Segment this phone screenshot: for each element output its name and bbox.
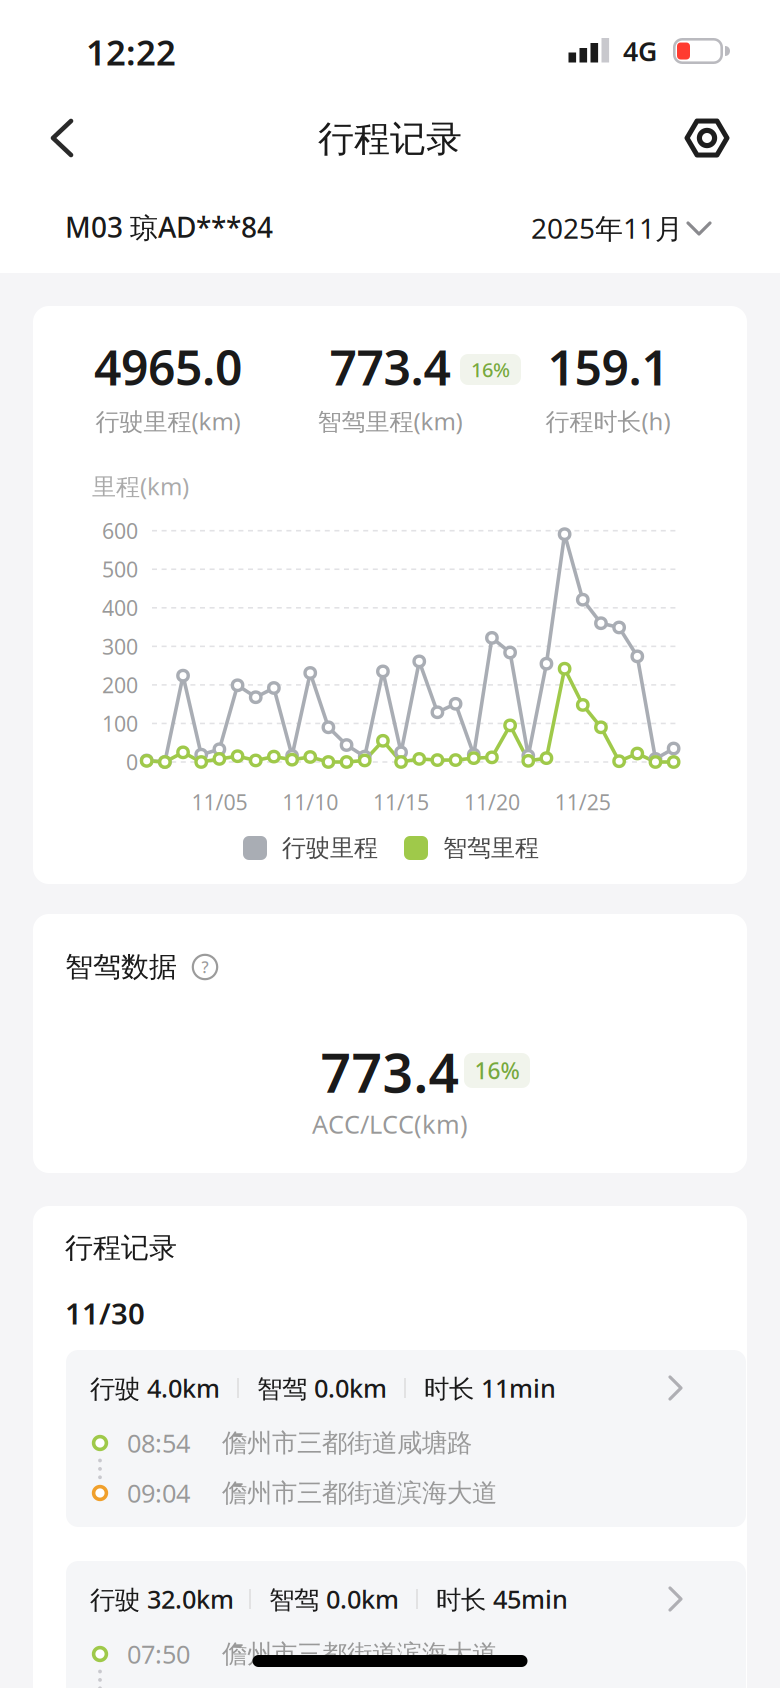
button[interactable]: 行驶 4.0km [66,1350,746,1527]
staticText: 500 [102,555,138,583]
staticText: 200 [102,671,138,699]
staticText: 16% [474,1055,519,1085]
staticText: 11/05 [191,788,247,816]
staticText: 773.4 [320,1037,459,1107]
staticText: 儋州市三都街道咸塘路 [222,1427,472,1458]
staticText: 行程记录 [318,117,462,161]
staticText: 4965.0 [94,335,242,399]
staticText: 智驾里程(km) [317,405,462,437]
staticText: 行驶里程(km) [95,405,240,437]
button[interactable]: M03 琼AD***84 [65,198,385,256]
button[interactable]: Settings [677,108,737,168]
staticText: 智驾 0.0km [257,1371,387,1405]
staticText: 11/25 [555,788,611,816]
staticText: M03 琼AD***84 [65,208,273,246]
staticText: 300 [102,632,138,660]
staticText: ACC/LCC(km) [312,1107,468,1141]
staticText: 08:54 [127,1426,190,1460]
button[interactable]: 2025年11月 [433,199,718,257]
staticText: 11/20 [464,788,520,816]
staticText: 07:50 [127,1637,190,1671]
staticText: 400 [102,594,138,622]
staticText: 行驶 32.0km [90,1582,234,1616]
button[interactable]: Back [31,109,95,167]
staticText: 行驶里程 [282,833,378,863]
staticText: 智驾 0.0km [269,1582,399,1616]
staticText: 09:04 [127,1476,190,1510]
staticText: 12:22 [86,29,176,75]
staticText: 行驶 4.0km [90,1371,220,1405]
staticText: 11/30 [65,1293,145,1332]
staticText: 2025年11月 [531,209,683,247]
staticText: 11/10 [282,788,338,816]
staticText: 智驾数据 [65,950,177,984]
staticText: 11/15 [373,788,429,816]
staticText: 行程时长(h) [545,405,670,437]
staticText: 773.4 [329,335,450,399]
staticText: 600 [102,516,138,545]
button[interactable]: 行驶 32.0km [66,1561,746,1688]
staticText: 里程(km) [92,470,189,502]
staticText: 儋州市三都街道滨海大道 [222,1477,497,1508]
staticText: 4G [623,33,657,69]
staticText: 行程记录 [65,1231,177,1265]
staticText: 100 [102,709,138,738]
staticText: ? [201,956,208,978]
staticText: 时长 11min [424,1371,556,1405]
staticText: 儋州市三都街道滨海大道 [222,1638,497,1669]
button[interactable]: 智驾数据说明 [191,953,218,980]
staticText: 0 [126,748,138,776]
staticText: 智驾里程 [443,833,539,863]
staticText: 16% [471,356,510,383]
staticText: 159.1 [547,335,668,399]
staticText: 时长 45min [436,1582,568,1616]
